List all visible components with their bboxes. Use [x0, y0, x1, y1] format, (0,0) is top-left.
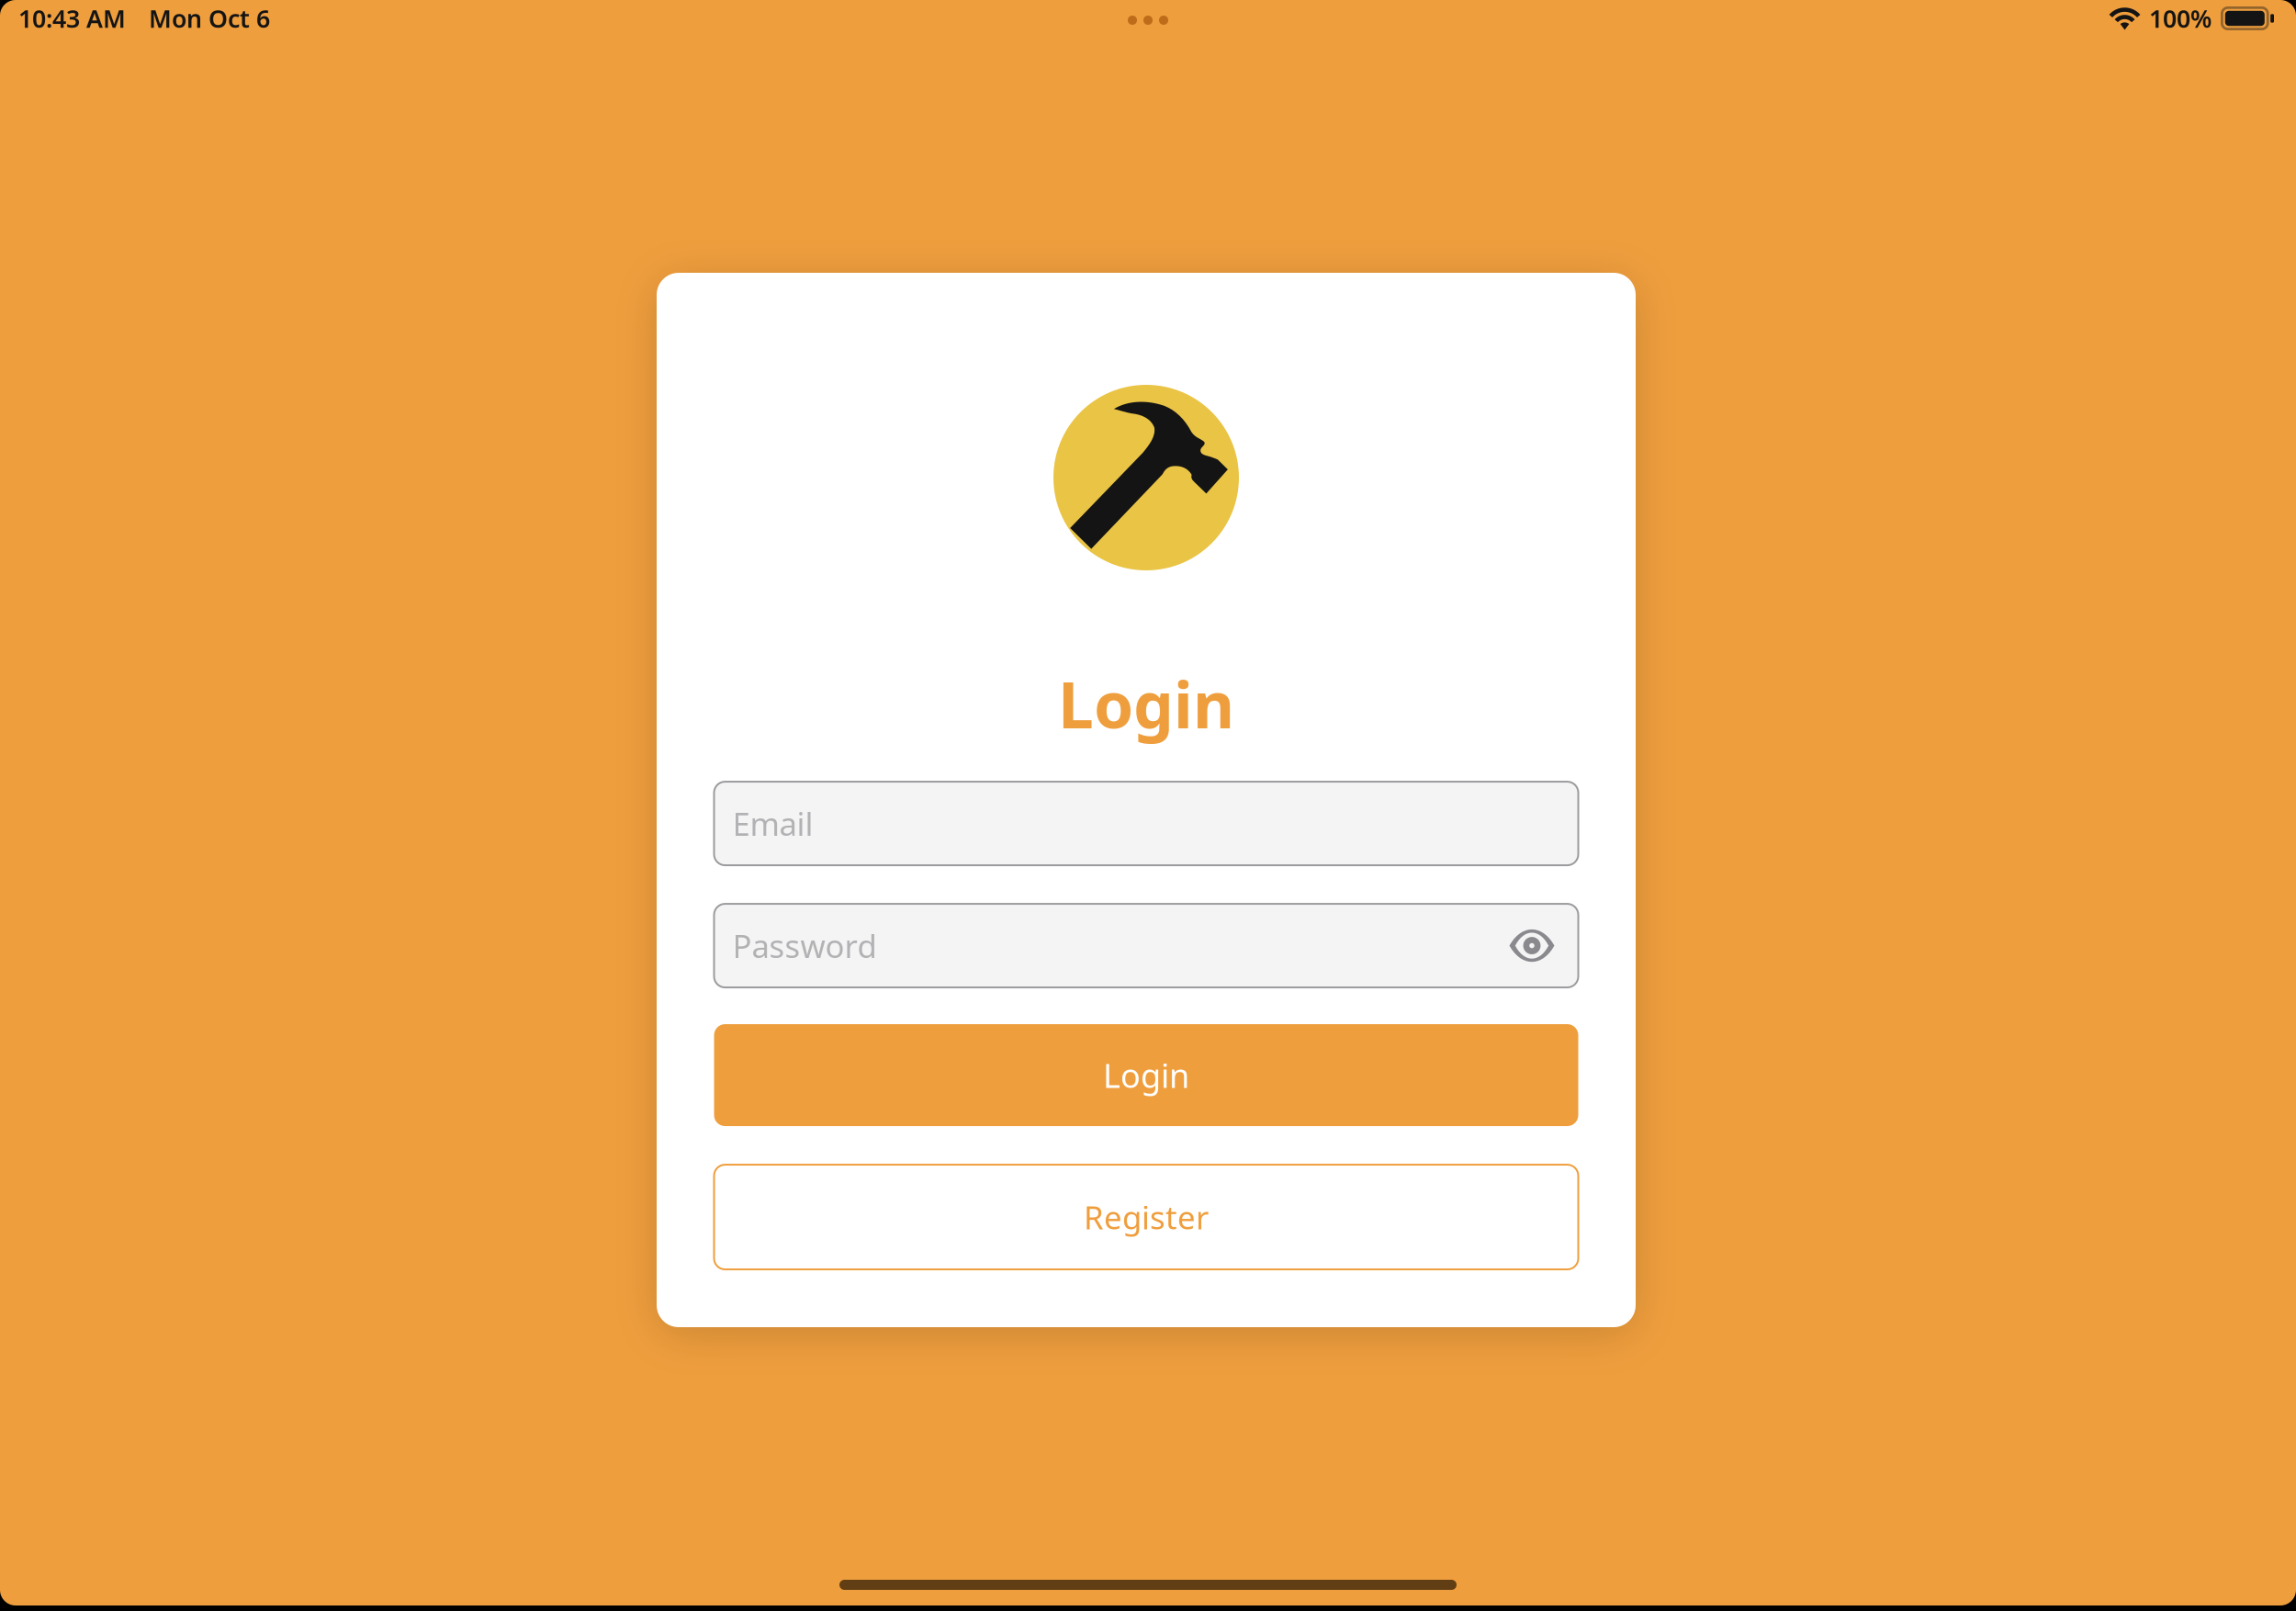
staticText: Mon Oct 6 [149, 2, 270, 35]
staticText: 10:43 AM [18, 2, 126, 35]
button[interactable]: Register [714, 1165, 1578, 1269]
staticText: 100% [2149, 2, 2212, 35]
staticText: Password [732, 925, 877, 967]
staticText: Email [732, 802, 813, 845]
button[interactable]: Multitasking controls [1093, 0, 1203, 40]
staticText: Register [1084, 1196, 1209, 1238]
staticText: Login [1058, 661, 1234, 746]
staticText: Login [1103, 1053, 1189, 1097]
button[interactable]: Email [714, 782, 1578, 865]
button[interactable]: Login [714, 1024, 1578, 1126]
button[interactable]: Password [714, 904, 1498, 987]
button[interactable]: Show password [1498, 917, 1565, 975]
